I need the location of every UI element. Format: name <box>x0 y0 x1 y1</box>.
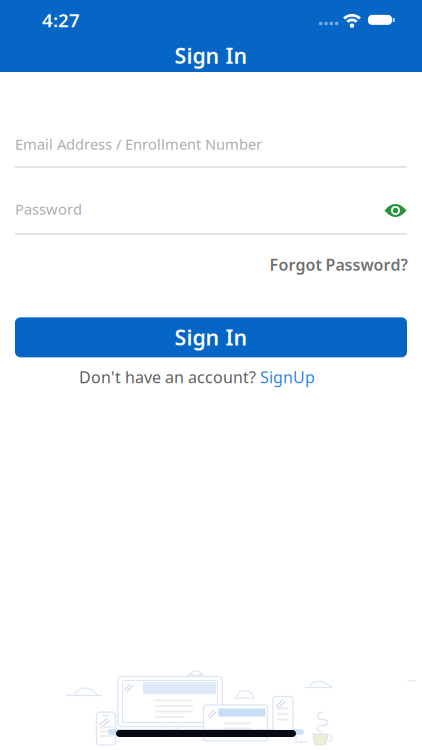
button[interactable]: Show password <box>380 198 410 222</box>
button[interactable]: Sign In <box>15 317 407 357</box>
staticText: Sign In <box>174 41 247 70</box>
staticText: Sign In <box>174 323 247 351</box>
staticText: SignUp <box>260 366 315 388</box>
staticText: Forgot Password? <box>269 254 407 275</box>
button[interactable]: SignUp <box>260 366 315 388</box>
button[interactable]: Forgot Password? <box>269 254 407 275</box>
staticText: 4:27 <box>42 8 80 32</box>
staticText: Password <box>15 199 82 219</box>
staticText: Don't have an account? <box>79 366 256 388</box>
staticText: Email Address / Enrollment Number <box>15 134 262 154</box>
